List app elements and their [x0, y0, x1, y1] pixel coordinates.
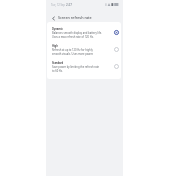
staticText: Standard — [52, 61, 64, 65]
button[interactable]: High — [47, 40, 121, 57]
staticText: Balances smooth display and battery life… — [52, 31, 102, 39]
staticText: Refresh at up to 120 Hz for highly smoot… — [52, 48, 94, 56]
button[interactable]: Dynamic — [47, 23, 121, 40]
staticText: High — [52, 44, 58, 48]
staticText: Screen refresh rate — [58, 15, 92, 20]
button[interactable]: Back — [49, 14, 57, 22]
staticText: Dynamic — [52, 27, 63, 31]
staticText: 2:27 — [66, 3, 72, 7]
staticText: Save power by limiting the refresh rate … — [52, 65, 100, 73]
staticText: Tue, 12 Sep — [51, 3, 65, 7]
button[interactable]: Standard — [47, 57, 121, 74]
